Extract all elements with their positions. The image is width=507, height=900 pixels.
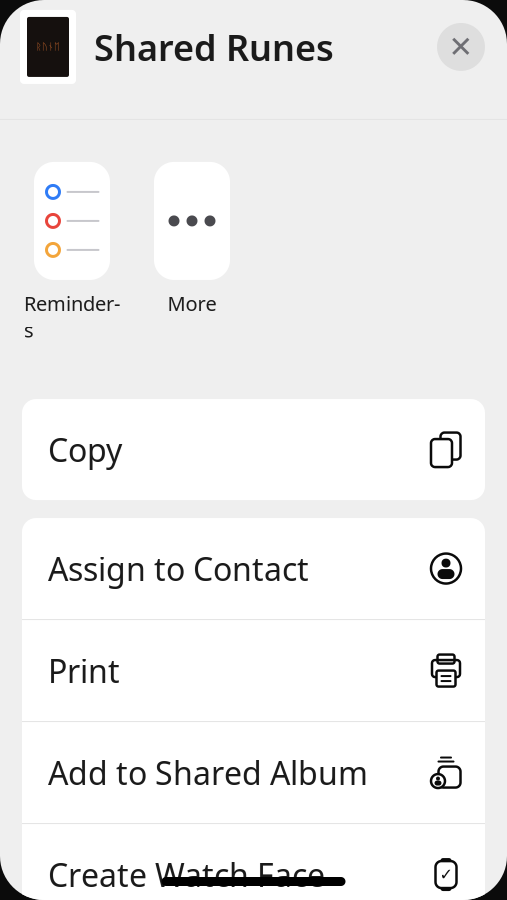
button[interactable]: More	[144, 162, 240, 316]
staticText: Shared Runes	[94, 23, 334, 71]
button[interactable]: Reminders	[24, 162, 120, 343]
button[interactable]: Add to Shared Album	[22, 722, 485, 823]
staticText: ✓	[439, 865, 452, 884]
staticText: ᚱᚢᚾᛖ	[36, 42, 60, 51]
button[interactable]: Create Watch Face	[22, 824, 485, 900]
staticText: Assign to Contact	[48, 547, 309, 590]
button[interactable]: Close	[433, 19, 489, 75]
staticText: Add to Shared Album	[48, 751, 368, 794]
staticText: More	[167, 290, 216, 316]
staticText: ✕	[448, 30, 473, 64]
staticText: Print	[48, 649, 120, 692]
staticText: Reminders	[24, 290, 120, 343]
staticText: Create Watch Face	[48, 853, 325, 896]
button[interactable]: Copy	[22, 399, 485, 500]
button[interactable]: Print	[22, 620, 485, 721]
button[interactable]: Assign to Contact	[22, 518, 485, 619]
staticText: Copy	[48, 428, 122, 471]
